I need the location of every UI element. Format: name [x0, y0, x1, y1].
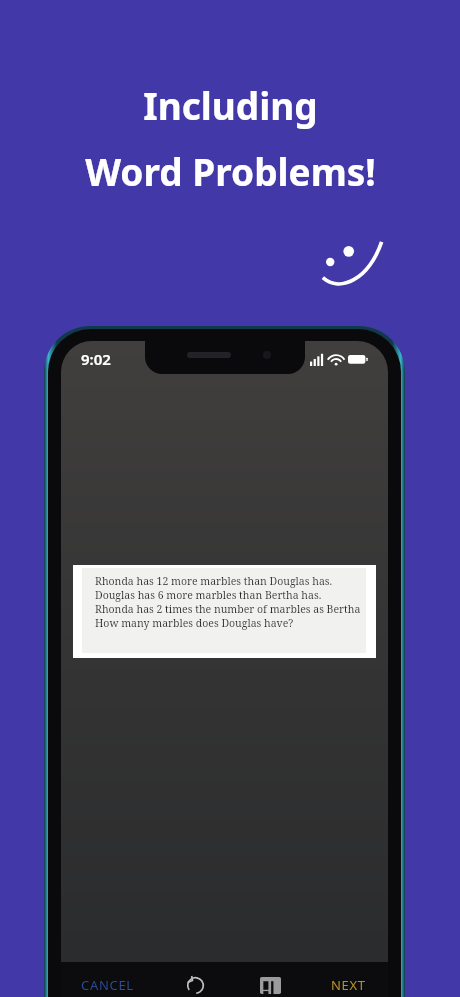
button[interactable]: Rhonda has 12 more marbles than Douglas … — [73, 565, 376, 658]
button[interactable]: Undo — [176, 966, 214, 997]
staticText: Word Problems! — [85, 146, 376, 196]
staticText: Douglas has 6 more marbles than Bertha h… — [95, 588, 322, 602]
staticText: CANCEL — [81, 976, 134, 994]
button[interactable]: CANCEL — [77, 968, 138, 997]
staticText: Including — [143, 80, 318, 130]
button[interactable]: Keyboard — [251, 966, 289, 997]
staticText: Rhonda has 12 more marbles than Douglas … — [95, 574, 333, 588]
staticText: 9:02 — [81, 349, 111, 369]
staticText: Rhonda has 2 times the number of marbles… — [95, 602, 376, 616]
button[interactable]: NEXT — [327, 968, 370, 997]
staticText: NEXT — [331, 976, 366, 994]
staticText: How many marbles does Douglas have? — [95, 616, 294, 630]
